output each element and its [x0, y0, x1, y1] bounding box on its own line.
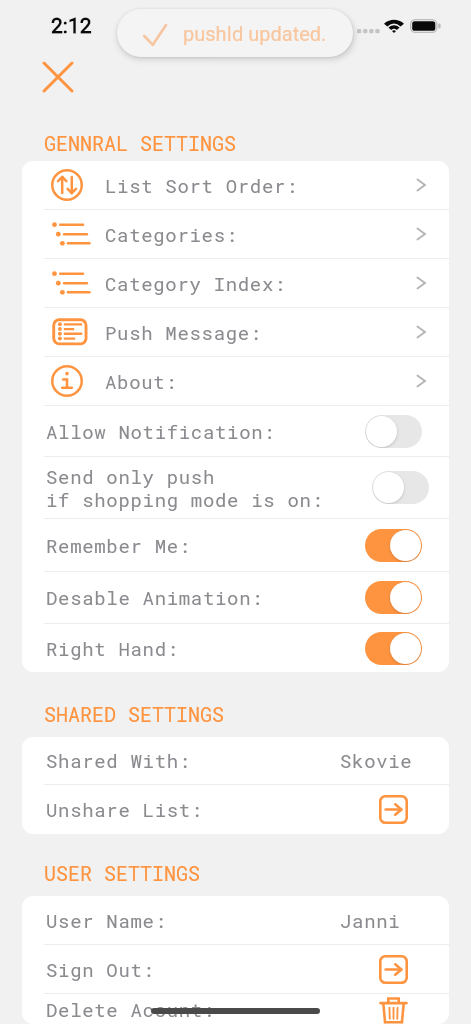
- button[interactable]: Delete Acount:: [22, 994, 449, 1024]
- staticText: USER SETTINGS: [44, 860, 201, 886]
- button[interactable]: Shared With:: [22, 737, 449, 784]
- staticText: Shared With:: [46, 748, 191, 773]
- button[interactable]: Categories:: [22, 210, 449, 258]
- button[interactable]: Remember Me:: [22, 519, 449, 571]
- button[interactable]: Push Message:: [22, 308, 449, 356]
- staticText: Delete Acount:: [46, 997, 216, 1022]
- staticText: Send only push if shopping mode is on:: [46, 464, 324, 512]
- staticText: Remember Me:: [46, 533, 191, 558]
- button[interactable]: Category Index:: [22, 259, 449, 307]
- button[interactable]: Right Hand:: [22, 624, 449, 672]
- button[interactable]: Send only push if shopping mode is on:: [22, 457, 449, 518]
- button[interactable]: User Name:: [22, 896, 449, 944]
- staticText: GENNRAL SETTINGS: [44, 130, 237, 156]
- button[interactable]: About:: [22, 357, 449, 405]
- button[interactable]: On: [365, 581, 422, 614]
- button[interactable]: On: [365, 529, 422, 562]
- button[interactable]: On: [365, 632, 422, 665]
- button[interactable]: Allow Notification:: [22, 406, 449, 456]
- staticText: 2:12: [51, 14, 92, 39]
- staticText: Push Message:: [105, 320, 262, 345]
- staticText: Unshare List:: [46, 797, 203, 822]
- staticText: SHARED SETTINGS: [44, 701, 225, 727]
- staticText: Sign Out:: [46, 957, 155, 982]
- staticText: About:: [105, 369, 178, 394]
- button[interactable]: Unshare List:: [22, 785, 449, 834]
- staticText: Category Index:: [105, 271, 287, 296]
- button[interactable]: List Sort Order:: [22, 161, 449, 209]
- staticText: Desable Animation:: [46, 585, 264, 610]
- button[interactable]: Off: [365, 415, 422, 448]
- button[interactable]: Sign Out:: [22, 945, 449, 993]
- button[interactable]: Off: [372, 471, 429, 504]
- button[interactable]: pushId updated.: [117, 9, 353, 57]
- staticText: Right Hand:: [46, 636, 179, 661]
- button[interactable]: Desable Animation:: [22, 572, 449, 623]
- staticText: Janni: [340, 908, 401, 933]
- button[interactable]: Close: [34, 53, 82, 101]
- staticText: Categories:: [105, 222, 238, 247]
- staticText: pushId updated.: [183, 22, 327, 45]
- staticText: Skovie: [340, 748, 413, 773]
- staticText: List Sort Order:: [105, 173, 299, 198]
- staticText: User Name:: [46, 908, 167, 933]
- staticText: Allow Notification:: [46, 419, 276, 444]
